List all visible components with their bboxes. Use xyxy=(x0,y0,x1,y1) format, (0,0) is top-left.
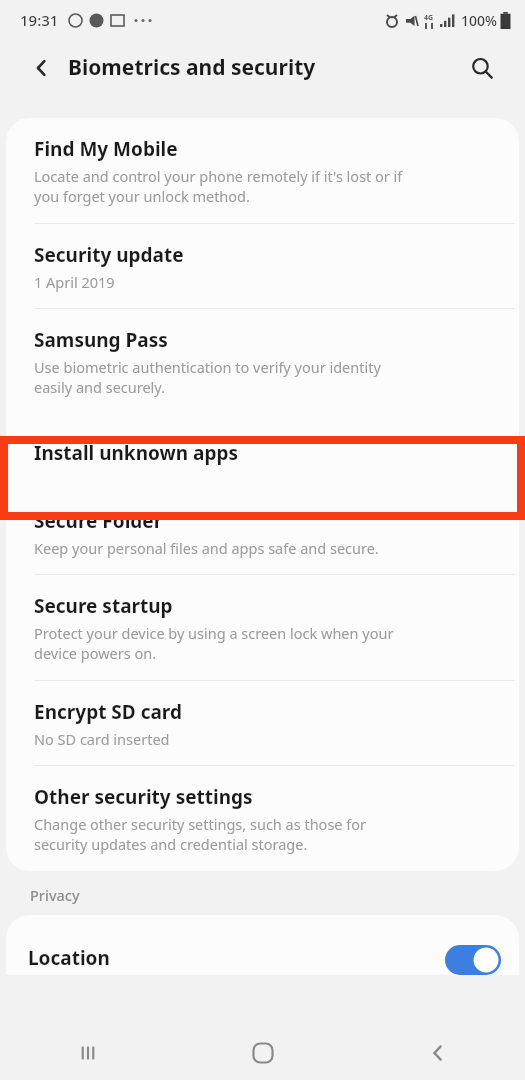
staticText: 19:31 xyxy=(20,10,59,30)
button[interactable]: Back xyxy=(22,48,62,88)
staticText: Other security settings xyxy=(34,784,253,810)
button[interactable]: Find My Mobile xyxy=(6,118,519,223)
button[interactable]: Back xyxy=(350,1026,525,1080)
staticText: 4G xyxy=(424,13,434,23)
staticText: Locate and control your phone remotely i… xyxy=(34,166,403,207)
button[interactable]: Recent apps xyxy=(0,1026,175,1080)
staticText: Security update xyxy=(34,242,184,268)
staticText: Use biometric authentication to verify y… xyxy=(34,357,381,398)
staticText: Samsung Pass xyxy=(34,327,168,353)
staticText: No SD card inserted xyxy=(34,729,170,749)
button[interactable]: Secure startup xyxy=(6,575,519,680)
button[interactable]: Home xyxy=(175,1026,350,1080)
button[interactable]: Samsung Pass xyxy=(6,309,519,414)
staticText: Secure Folder xyxy=(34,508,163,534)
staticText: Install unknown apps xyxy=(34,440,238,466)
button[interactable]: Encrypt SD card xyxy=(6,681,519,765)
staticText: 100% xyxy=(461,11,497,30)
staticText: Encrypt SD card xyxy=(34,699,182,725)
staticText: Protect your device by using a screen lo… xyxy=(34,623,394,664)
staticText: Biometrics and security xyxy=(68,53,316,82)
staticText: Find My Mobile xyxy=(34,136,178,162)
staticText: Secure startup xyxy=(34,593,173,619)
button[interactable]: Search xyxy=(461,47,503,89)
staticText: Keep your personal files and apps safe a… xyxy=(34,538,379,558)
staticText: Change other security settings, such as … xyxy=(34,814,367,855)
staticText: Privacy xyxy=(30,885,80,905)
button[interactable]: Security update xyxy=(6,224,519,308)
button[interactable]: Location xyxy=(6,915,519,975)
button[interactable]: Other security settings xyxy=(6,766,519,871)
staticText: 1 April 2019 xyxy=(34,272,115,292)
button[interactable]: Install unknown apps xyxy=(6,414,519,490)
button[interactable]: Secure Folder xyxy=(6,490,519,574)
staticText: Location xyxy=(28,945,110,971)
